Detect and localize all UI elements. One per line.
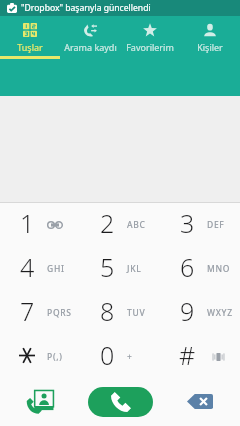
staticText: 6 <box>180 250 195 284</box>
staticText: PQRS <box>47 307 72 319</box>
staticText: P(,) <box>47 351 63 363</box>
button[interactable]: 8 <box>80 291 160 335</box>
button[interactable]: 2 <box>80 203 160 247</box>
button[interactable]: 9 <box>160 291 240 335</box>
button[interactable]: 1 <box>0 203 80 247</box>
button[interactable]: Call <box>88 387 153 417</box>
staticText: GHI <box>47 263 65 275</box>
staticText: 0 <box>100 338 115 372</box>
button[interactable]: Delete <box>160 378 240 425</box>
staticText: MNO <box>207 263 231 275</box>
staticText: Tuşlar <box>17 41 43 53</box>
staticText: 8 <box>100 294 115 328</box>
button[interactable]: Arama kaydı <box>60 16 120 59</box>
button[interactable]: 5 <box>80 247 160 291</box>
staticText: JKL <box>127 263 142 275</box>
staticText: DEF <box>207 219 225 231</box>
button[interactable]: 7 <box>0 291 80 335</box>
staticText: WXYZ <box>207 307 233 319</box>
button[interactable]: Favorilerim <box>120 16 180 59</box>
button[interactable]: # <box>160 335 240 379</box>
staticText: 5 <box>100 250 115 284</box>
button[interactable]: 0 <box>80 335 160 379</box>
staticText: # <box>179 338 195 372</box>
staticText: ABC <box>127 219 146 231</box>
staticText: 9 <box>180 294 195 328</box>
button[interactable]: Kişiler <box>180 16 240 59</box>
staticText: TUV <box>127 307 146 319</box>
button[interactable]: P(,) <box>0 335 80 379</box>
button[interactable]: Tuşlar <box>0 16 60 59</box>
button[interactable]: 4 <box>0 247 80 291</box>
staticText: Favorilerim <box>126 41 174 53</box>
staticText: + <box>127 351 133 363</box>
staticText: "Dropbox" başarıyla güncellendi <box>21 2 151 14</box>
button[interactable]: Add to contacts <box>0 378 80 425</box>
staticText: 4 <box>20 250 35 284</box>
staticText: 7 <box>20 294 35 328</box>
staticText: 3 <box>180 206 195 240</box>
staticText: Kişiler <box>197 41 223 53</box>
button[interactable]: 3 <box>160 203 240 247</box>
staticText: 2 <box>100 206 115 240</box>
staticText: 1 <box>20 206 35 240</box>
button[interactable]: 6 <box>160 247 240 291</box>
staticText: Arama kaydı <box>64 41 117 53</box>
